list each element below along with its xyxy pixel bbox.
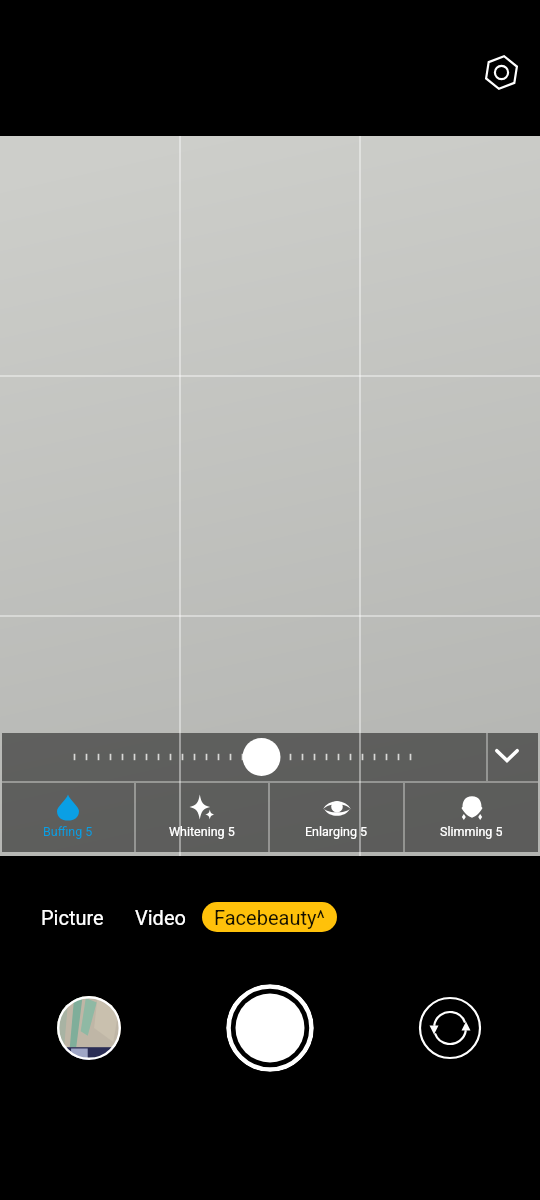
button[interactable]: Beauty level slider [2, 733, 486, 781]
staticText: Whitening 5 [169, 824, 235, 839]
button[interactable]: Video [135, 902, 186, 932]
staticText: Slimming 5 [440, 824, 503, 839]
button[interactable]: Open gallery [57, 996, 121, 1060]
staticText: Buffing 5 [43, 824, 93, 839]
staticText: Video [135, 906, 186, 929]
button[interactable]: Take photo [226, 984, 314, 1072]
button[interactable]: Picture [41, 902, 104, 932]
button[interactable]: Enlarging 5 [270, 783, 403, 852]
button[interactable]: Slimming 5 [405, 783, 538, 852]
button[interactable]: Camera settings [477, 48, 525, 96]
button[interactable]: Collapse beauty panel [488, 733, 538, 781]
button[interactable]: Whitening 5 [136, 783, 268, 852]
button[interactable]: Switch camera [418, 996, 482, 1060]
staticText: Picture [41, 906, 104, 929]
staticText: Facebeauty^ [214, 906, 325, 929]
button[interactable]: Facebeauty^ [202, 902, 337, 932]
staticText: Enlarging 5 [305, 824, 368, 839]
button[interactable]: Buffing 5 [2, 783, 134, 852]
